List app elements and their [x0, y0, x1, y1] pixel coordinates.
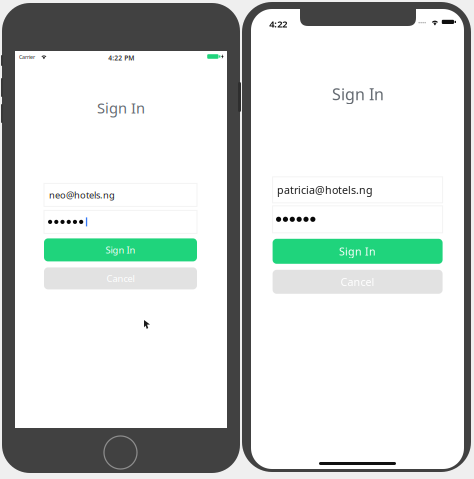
staticText: Sign In	[339, 244, 376, 258]
staticText: Sign In	[97, 98, 145, 117]
button[interactable]: Sign In	[273, 239, 443, 264]
button[interactable]: Cancel	[44, 267, 197, 289]
staticText: neo@hotels.ng	[49, 189, 115, 201]
staticText: Cancel	[341, 275, 375, 289]
staticText: patricia@hotels.ng	[277, 183, 373, 197]
staticText: Sign In	[105, 244, 135, 256]
button[interactable]: Sign In	[44, 238, 197, 261]
staticText: Sign In	[332, 83, 384, 105]
staticText: Carrier	[19, 53, 35, 60]
staticText: Cancel	[106, 272, 134, 285]
staticText: 4:22	[269, 18, 287, 30]
button[interactable]: Cancel	[273, 270, 443, 294]
staticText: 4:22 PM	[108, 53, 134, 62]
